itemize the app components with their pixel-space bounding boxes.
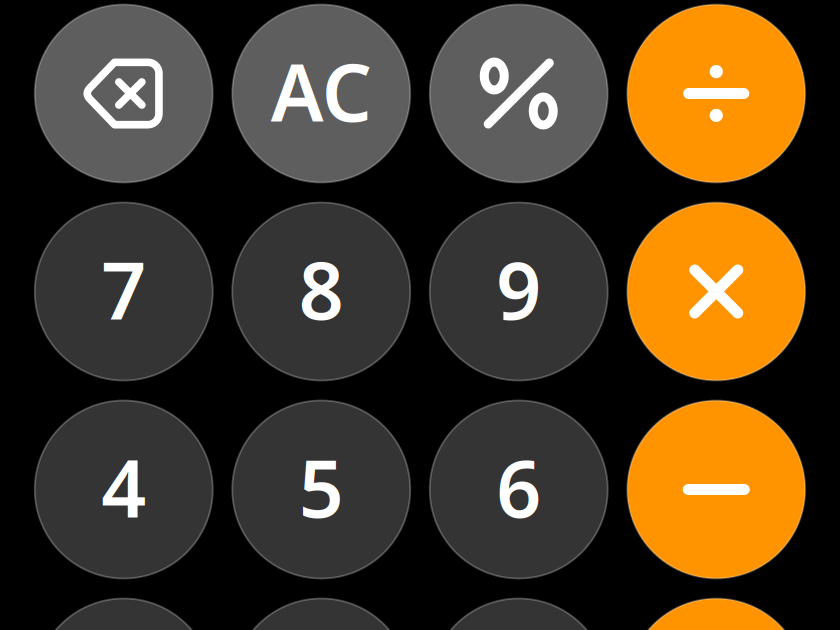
button[interactable]: Percent [430,4,608,182]
button[interactable]: 2 [232,598,410,630]
staticText: 7 [101,237,146,341]
button[interactable]: 7 [35,202,213,380]
staticText: 8 [299,237,344,341]
button[interactable]: Subtract [627,400,805,578]
button[interactable]: Add [627,598,805,630]
staticText: 4 [101,435,146,539]
button[interactable]: 3 [430,598,608,630]
button[interactable]: 1 [35,598,213,630]
staticText: 5 [299,435,344,539]
button[interactable]: 5 [232,400,410,578]
staticText: 6 [496,435,541,539]
button[interactable]: 6 [430,400,608,578]
button[interactable]: 4 [35,400,213,578]
staticText: AC [271,39,372,143]
button[interactable]: Multiply [627,202,805,380]
button[interactable]: 9 [430,202,608,380]
staticText: 9 [496,237,541,341]
button[interactable]: 8 [232,202,410,380]
button[interactable]: AC [232,4,410,182]
button[interactable]: Delete [35,4,213,182]
button[interactable]: Divide [627,4,805,182]
